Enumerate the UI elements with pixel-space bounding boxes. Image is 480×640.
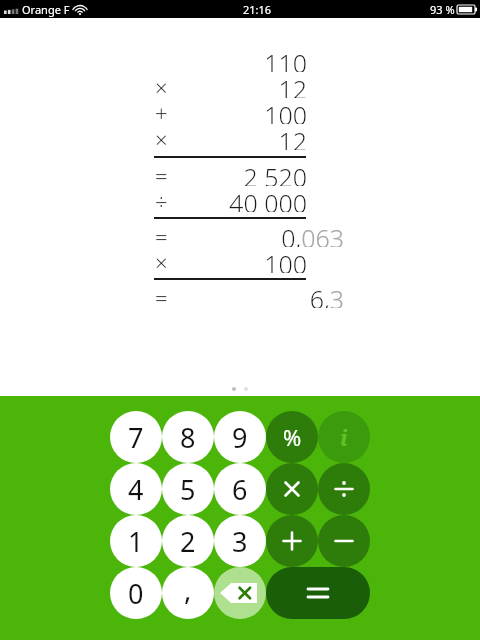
button[interactable]: Multiply (266, 463, 318, 515)
button[interactable]: Percent (266, 411, 318, 463)
staticText: = (155, 160, 168, 186)
staticText: = (155, 282, 168, 308)
staticText: × (155, 72, 168, 98)
staticText: i (340, 422, 348, 452)
staticText: ÷ (155, 186, 168, 212)
staticText: 7 (128, 419, 144, 456)
staticText: 6,3 (309, 282, 344, 308)
staticText: × (155, 247, 168, 273)
staticText: 40 000 (229, 186, 307, 212)
staticText: Orange F (22, 2, 70, 17)
staticText: 3 (232, 523, 248, 560)
button[interactable]: Minus (318, 515, 370, 567)
button[interactable]: 9 (214, 411, 266, 463)
staticText: 0 (128, 575, 144, 612)
staticText: 21:16 (243, 2, 272, 17)
button[interactable]: Divide (318, 463, 370, 515)
staticText: 110 (264, 46, 307, 72)
staticText: 100 (264, 247, 307, 273)
button[interactable]: Equals (266, 567, 370, 619)
staticText: × (155, 124, 168, 150)
button[interactable]: 3 (214, 515, 266, 567)
button[interactable]: 6 (214, 463, 266, 515)
staticText: 100 (264, 98, 307, 124)
staticText: 12 (278, 124, 307, 150)
button[interactable]: 7 (110, 411, 162, 463)
button[interactable]: 5 (162, 463, 214, 515)
button[interactable]: 8 (162, 411, 214, 463)
staticText: 0,063 (281, 221, 344, 247)
staticText: 2 520 (243, 160, 307, 186)
staticText: 1 (128, 523, 144, 560)
button[interactable]: 2 (162, 515, 214, 567)
button[interactable]: 0 (110, 567, 162, 619)
button[interactable]: 4 (110, 463, 162, 515)
staticText: + (155, 98, 168, 124)
staticText: 93 % (430, 2, 455, 17)
staticText: 8 (180, 419, 196, 456)
staticText: % (283, 422, 302, 452)
button[interactable]: , (162, 567, 214, 619)
button[interactable]: 1 (110, 515, 162, 567)
staticText: 4 (128, 471, 144, 508)
button[interactable]: Info (318, 411, 370, 463)
button[interactable]: Delete (214, 567, 266, 619)
staticText: 2 (180, 523, 196, 560)
staticText: 6 (232, 471, 248, 508)
staticText: 5 (180, 471, 196, 508)
staticText: = (155, 221, 168, 247)
staticText: , (184, 570, 192, 608)
staticText: 9 (232, 419, 248, 456)
button[interactable]: Plus (266, 515, 318, 567)
staticText: 12 (278, 72, 307, 98)
